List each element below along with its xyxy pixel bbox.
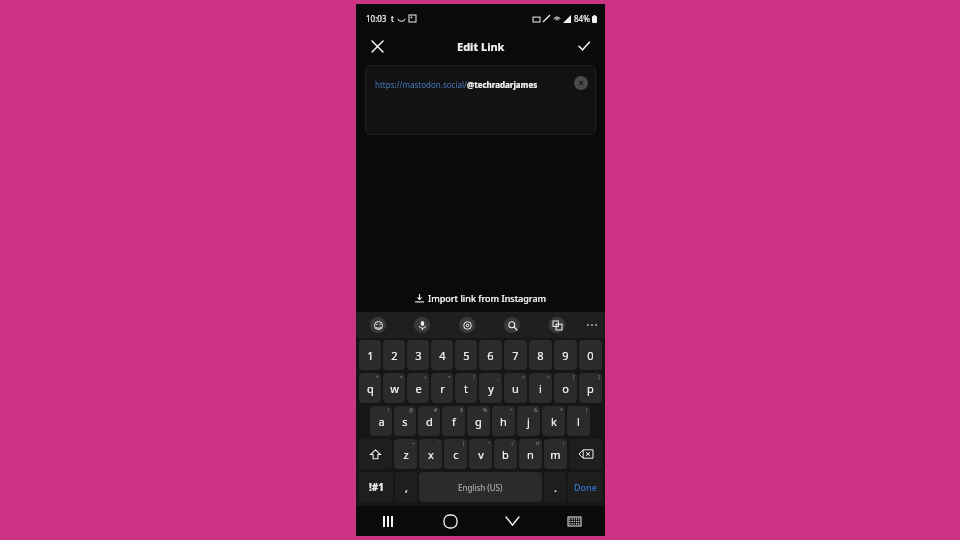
staticText: b xyxy=(502,447,509,462)
button[interactable]: b xyxy=(494,439,517,469)
button[interactable]: https://mastodon.social/@techradarjames xyxy=(365,65,596,135)
button[interactable]: q xyxy=(359,373,381,403)
staticText: 3 xyxy=(415,348,422,363)
button[interactable]: 3 xyxy=(407,340,429,370)
button[interactable]: k xyxy=(542,406,565,436)
button[interactable]: Keyboard layout xyxy=(543,506,605,536)
button[interactable]: Clear text xyxy=(574,76,588,90)
button[interactable]: r xyxy=(431,373,453,403)
staticText: a xyxy=(378,414,385,429)
button[interactable]: , xyxy=(395,472,417,502)
staticText: 5 xyxy=(463,348,470,363)
staticText: English (US) xyxy=(458,482,503,493)
staticText: ] xyxy=(598,374,600,381)
staticText: 2 xyxy=(391,348,398,363)
button[interactable]: c xyxy=(444,439,467,469)
button[interactable]: Hide keyboard xyxy=(481,506,543,536)
button[interactable]: 2 xyxy=(383,340,405,370)
button[interactable]: 5 xyxy=(455,340,477,370)
button[interactable]: 6 xyxy=(479,340,502,370)
button[interactable]: 8 xyxy=(529,340,552,370)
button[interactable]: g xyxy=(467,406,490,436)
staticText: * xyxy=(560,407,563,414)
staticText: [ xyxy=(573,374,575,381)
staticText: / xyxy=(473,374,475,381)
staticText: x xyxy=(428,447,434,462)
staticText: e xyxy=(415,381,422,396)
button[interactable]: Emoji xyxy=(356,312,400,338)
button[interactable]: x xyxy=(419,439,442,469)
button[interactable]: Home xyxy=(419,506,481,536)
button[interactable]: s xyxy=(394,406,416,436)
staticText: _ xyxy=(497,374,500,381)
button[interactable]: e xyxy=(407,373,429,403)
staticText: q xyxy=(367,381,374,396)
staticText: @ xyxy=(409,407,414,414)
button[interactable]: More options xyxy=(579,312,605,338)
staticText: 1 xyxy=(367,348,374,363)
button[interactable]: Done xyxy=(568,472,602,502)
button[interactable]: Search xyxy=(489,312,534,338)
button[interactable]: !#1 xyxy=(359,472,393,502)
button[interactable]: o xyxy=(554,373,577,403)
staticText: y xyxy=(488,381,494,396)
button[interactable]: . xyxy=(544,472,566,502)
staticText: t xyxy=(391,13,394,24)
staticText: g xyxy=(475,414,482,429)
button[interactable]: Recent apps xyxy=(356,506,419,536)
button[interactable]: w xyxy=(383,373,405,403)
staticText: l xyxy=(577,414,580,429)
button[interactable]: j xyxy=(517,406,540,436)
button[interactable]: Settings xyxy=(444,312,489,338)
button[interactable]: 9 xyxy=(554,340,577,370)
button[interactable]: 7 xyxy=(504,340,527,370)
staticText: < xyxy=(522,374,525,381)
button[interactable]: z xyxy=(394,439,417,469)
staticText: $ xyxy=(460,407,463,414)
button[interactable]: l xyxy=(567,406,590,436)
button[interactable]: d xyxy=(418,406,440,436)
staticText: % xyxy=(483,407,488,414)
staticText: c xyxy=(453,447,459,462)
button[interactable]: h xyxy=(492,406,515,436)
staticText: !#1 xyxy=(369,480,384,494)
staticText: j xyxy=(527,414,530,429)
staticText: r xyxy=(440,381,445,396)
button[interactable]: m xyxy=(544,439,567,469)
button[interactable]: n xyxy=(519,439,542,469)
staticText: Edit Link xyxy=(457,39,505,54)
button[interactable]: v xyxy=(469,439,492,469)
button[interactable]: Translate xyxy=(534,312,579,338)
staticText: ! xyxy=(388,407,390,414)
staticText: ÷ xyxy=(562,440,565,447)
button[interactable]: y xyxy=(479,373,502,403)
button[interactable]: Backspace xyxy=(569,439,602,469)
staticText: > xyxy=(547,374,550,381)
button[interactable]: 4 xyxy=(431,340,453,370)
staticText: 8 xyxy=(537,348,544,363)
button[interactable]: Save xyxy=(571,33,597,59)
button[interactable]: Shift xyxy=(359,439,392,469)
button[interactable]: Import link from Instagram xyxy=(356,284,605,312)
button[interactable]: i xyxy=(529,373,552,403)
button[interactable]: 1 xyxy=(359,340,381,370)
staticText: u xyxy=(512,381,519,396)
staticText: 10:03 xyxy=(366,13,387,24)
staticText: , xyxy=(405,480,408,495)
staticText: s xyxy=(402,414,408,429)
button[interactable]: t xyxy=(455,373,477,403)
staticText: • xyxy=(488,440,490,447)
button[interactable]: 0 xyxy=(579,340,602,370)
button[interactable]: u xyxy=(504,373,527,403)
staticText: 0 xyxy=(587,348,594,363)
button[interactable]: f xyxy=(442,406,465,436)
staticText: 84% xyxy=(574,13,590,24)
button[interactable]: English (US) xyxy=(419,472,542,502)
button[interactable]: a xyxy=(370,406,392,436)
button[interactable]: p xyxy=(579,373,602,403)
staticText: 6 xyxy=(487,348,494,363)
staticText: Done xyxy=(574,481,597,493)
button[interactable]: Close xyxy=(364,33,390,59)
staticText: f xyxy=(452,414,456,429)
button[interactable]: Voice input xyxy=(400,312,444,338)
